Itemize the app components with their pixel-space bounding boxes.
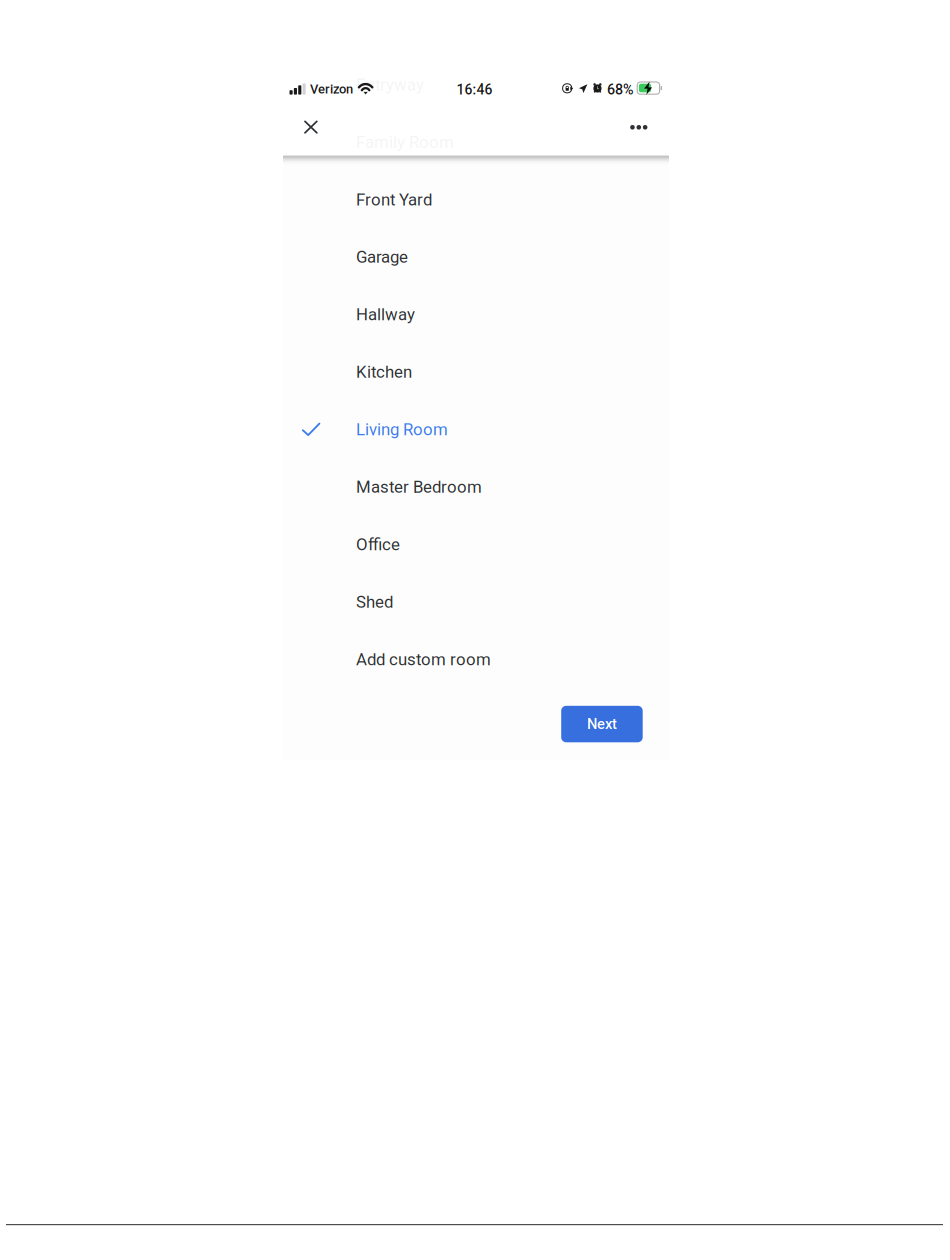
button[interactable]: Add custom room bbox=[283, 631, 669, 688]
button[interactable]: Living Room bbox=[283, 401, 669, 458]
button[interactable]: More options bbox=[618, 106, 660, 148]
staticText: Shed bbox=[356, 592, 393, 612]
staticText: Add custom room bbox=[356, 650, 491, 669]
button[interactable]: Close bbox=[290, 106, 332, 148]
staticText: 16:46 bbox=[457, 82, 493, 98]
button[interactable]: Master Bedroom bbox=[283, 458, 669, 516]
staticText: Living Room bbox=[356, 420, 448, 439]
staticText: Next bbox=[587, 715, 617, 733]
button[interactable]: Shed bbox=[283, 573, 669, 631]
staticText: Master Bedroom bbox=[356, 477, 482, 497]
button[interactable]: Front Yard bbox=[283, 171, 669, 228]
button[interactable]: Garage bbox=[283, 228, 669, 286]
staticText: Hallway bbox=[356, 305, 415, 324]
button[interactable]: Kitchen bbox=[283, 343, 669, 401]
staticText: Family Room bbox=[356, 132, 454, 152]
staticText: Kitchen bbox=[356, 362, 412, 382]
button[interactable]: Hallway bbox=[283, 286, 669, 343]
button[interactable]: Next bbox=[561, 706, 643, 742]
staticText: Garage bbox=[356, 247, 408, 267]
staticText: Entryway bbox=[356, 75, 424, 95]
button[interactable]: Office bbox=[283, 516, 669, 573]
staticText: Verizon bbox=[310, 82, 353, 97]
staticText: 68% bbox=[607, 81, 634, 98]
staticText: Office bbox=[356, 535, 400, 554]
staticText: Front Yard bbox=[356, 190, 432, 209]
